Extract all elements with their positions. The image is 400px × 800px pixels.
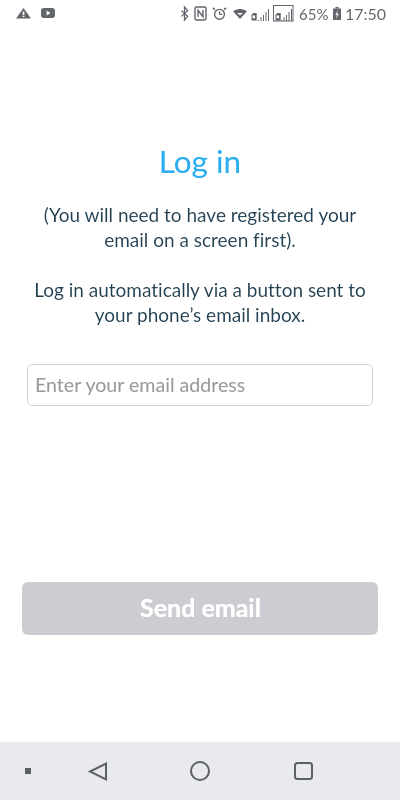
staticText: Send email: [140, 592, 261, 622]
button[interactable]: Send email: [22, 582, 378, 635]
button[interactable]: Menu: [16, 759, 40, 783]
staticText: 65%: [299, 5, 329, 23]
button[interactable]: Enter your email address: [27, 364, 373, 406]
button[interactable]: Recents: [283, 751, 323, 791]
staticText: (You will need to have registered your e…: [0, 203, 400, 251]
staticText: Log in: [0, 142, 400, 180]
staticText: 17:50: [345, 4, 387, 23]
staticText: Log in automatically via a button sent t…: [0, 278, 400, 326]
button[interactable]: Back: [78, 751, 118, 791]
button[interactable]: Home: [180, 751, 220, 791]
staticText: Enter your email address: [35, 373, 246, 397]
